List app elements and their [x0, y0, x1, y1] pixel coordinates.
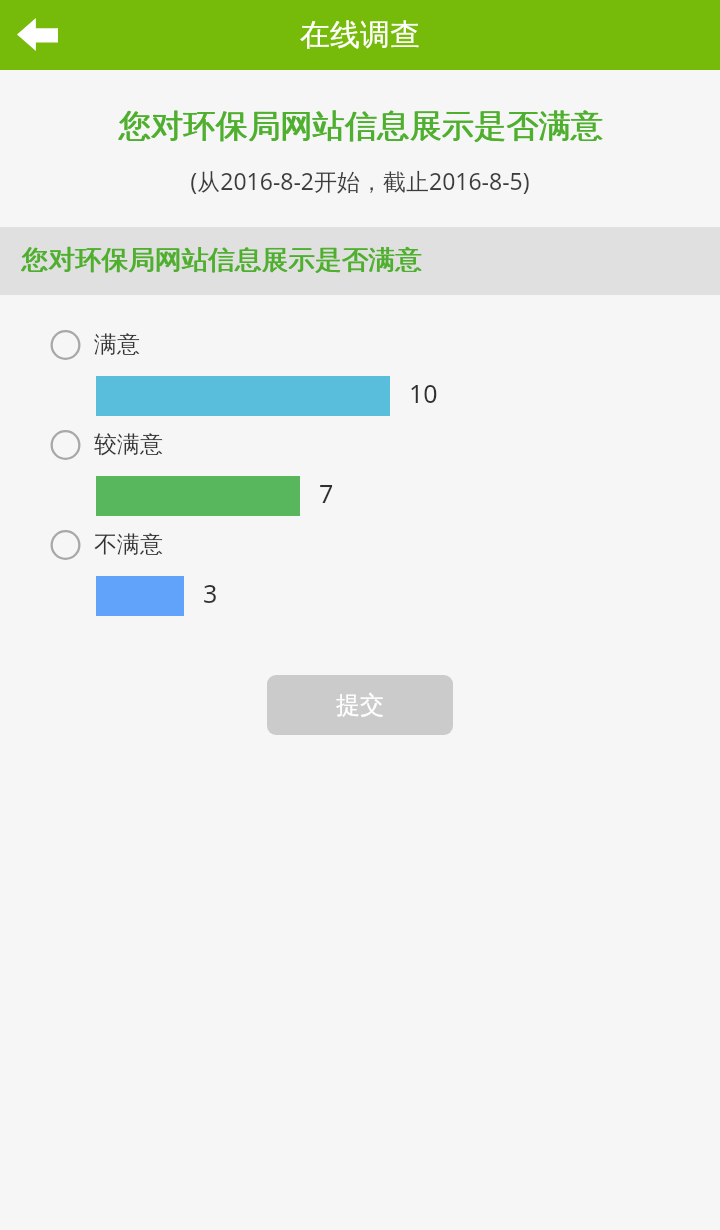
staticText: 3 — [203, 576, 218, 610]
button[interactable]: Back — [0, 0, 74, 70]
staticText: 您对环保局网站信息展示是否满意 — [119, 106, 604, 147]
staticText: 较满意 — [94, 430, 163, 459]
button[interactable]: 满意 — [0, 330, 720, 430]
staticText: 不满意 — [94, 530, 163, 559]
button[interactable]: 提交 — [267, 675, 453, 735]
button[interactable]: 较满意 — [0, 430, 720, 530]
staticText: (从2016-8-2开始，截止2016-8-5) — [190, 165, 530, 196]
staticText: 提交 — [336, 690, 384, 720]
staticText: 您对环保局网站信息展示是否满意 — [118, 106, 603, 147]
staticText: 在线调查 — [300, 16, 420, 54]
button[interactable]: 不满意 — [0, 530, 720, 630]
staticText: 7 — [319, 476, 334, 510]
staticText: 10 — [409, 376, 438, 410]
staticText: 您对环保局网站信息展示是否满意 — [21, 243, 422, 277]
staticText: 满意 — [94, 330, 140, 359]
staticText: 您对环保局网站信息展示是否满意 — [22, 243, 423, 277]
